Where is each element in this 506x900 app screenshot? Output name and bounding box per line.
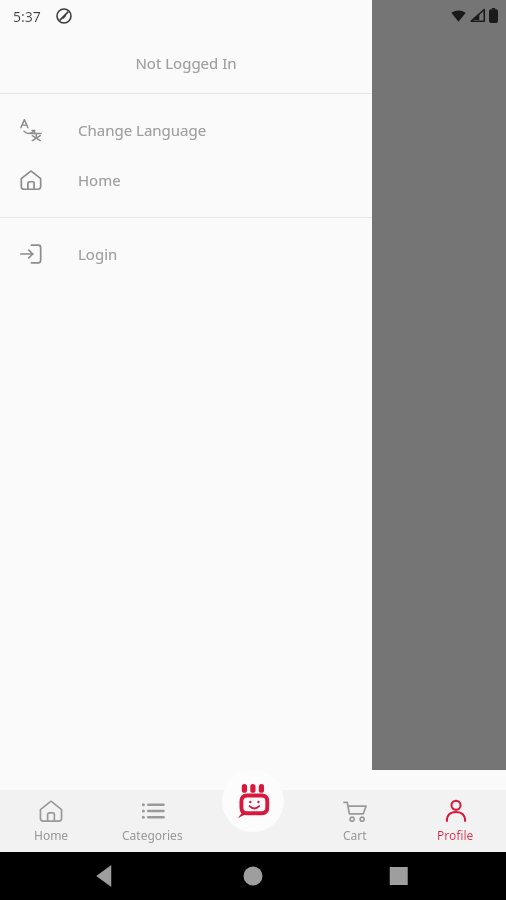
staticText: Change Language <box>78 120 207 140</box>
button[interactable]: Close drawer <box>372 0 506 770</box>
button[interactable]: Home <box>0 155 372 205</box>
button[interactable]: Change Language <box>0 105 372 155</box>
staticText: Categories <box>122 827 183 843</box>
staticText: Login <box>78 244 118 264</box>
button[interactable]: Home <box>0 790 102 852</box>
staticText: Not Logged In <box>135 53 237 73</box>
staticText: 5:37 <box>13 7 41 26</box>
button[interactable]: Profile <box>405 790 506 852</box>
button[interactable]: Shop <box>222 770 284 832</box>
button[interactable]: Cart <box>304 790 405 852</box>
staticText: Profile <box>437 827 474 843</box>
button[interactable]: Categories <box>102 790 203 852</box>
staticText: Home <box>34 827 69 843</box>
staticText: Cart <box>343 827 367 843</box>
staticText: Home <box>78 170 121 190</box>
button[interactable]: Login <box>0 229 372 279</box>
